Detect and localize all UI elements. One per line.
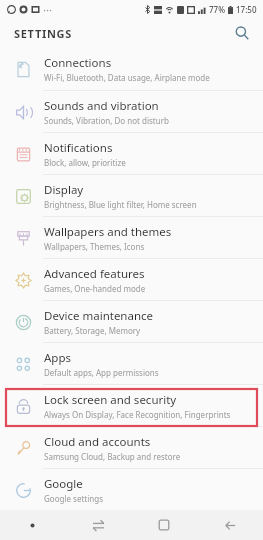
staticText: Wi-Fi, Bluetooth, Data usage, Airplane m… bbox=[44, 72, 210, 83]
staticText: 17:50 bbox=[236, 4, 257, 15]
button[interactable]: Apps bbox=[0, 343, 263, 384]
staticText: Google settings bbox=[44, 493, 103, 504]
button[interactable]: Wallpapers and themes bbox=[0, 217, 263, 258]
staticText: Always On Display, Face Recognition, Fin… bbox=[44, 409, 231, 420]
staticText: Sounds and vibration bbox=[44, 98, 159, 114]
staticText: Notifications bbox=[44, 140, 113, 156]
staticText: Samsung Cloud, Backup and restore bbox=[44, 451, 181, 462]
staticText: Brightness, Blue light filter, Home scre… bbox=[44, 199, 197, 210]
button[interactable]: Home bbox=[131, 510, 197, 540]
button[interactable]: Advanced features bbox=[0, 259, 263, 300]
button[interactable]: Cloud and accounts bbox=[0, 427, 263, 468]
staticText: Default apps, App permissions bbox=[44, 367, 159, 378]
staticText: SETTINGS bbox=[14, 26, 72, 41]
button[interactable]: Notifications bbox=[0, 133, 263, 174]
staticText: Advanced features bbox=[44, 266, 145, 282]
staticText: Sounds, Vibration, Do not disturb bbox=[44, 115, 169, 126]
staticText: Block, allow, prioritize bbox=[44, 157, 126, 168]
button[interactable]: Lock screen and security bbox=[0, 385, 263, 426]
button[interactable]: Connections bbox=[0, 48, 263, 90]
button[interactable]: Sounds and vibration bbox=[0, 91, 263, 132]
staticText: Wallpapers, Themes, Icons bbox=[44, 241, 145, 252]
button[interactable]: Google bbox=[0, 469, 263, 510]
staticText: Device maintenance bbox=[44, 308, 154, 324]
staticText: Lock screen and security bbox=[44, 392, 177, 408]
staticText: Wallpapers and themes bbox=[44, 224, 172, 240]
staticText: Connections bbox=[44, 55, 112, 71]
staticText: Display bbox=[44, 182, 84, 198]
button[interactable]: Device maintenance bbox=[0, 301, 263, 342]
staticText: Games, One-handed mode bbox=[44, 283, 146, 294]
staticText: Battery, Storage, Memory bbox=[44, 325, 141, 336]
staticText: 77% bbox=[209, 4, 225, 15]
staticText: Apps bbox=[44, 350, 72, 366]
button[interactable]: Search bbox=[229, 20, 255, 46]
button[interactable]: Recents bbox=[65, 510, 131, 540]
staticText: Cloud and accounts bbox=[44, 434, 151, 450]
staticText: Google bbox=[44, 476, 83, 492]
button[interactable]: Display bbox=[0, 175, 263, 216]
button[interactable]: Menu indicator bbox=[0, 510, 65, 540]
button[interactable]: Back bbox=[197, 510, 263, 540]
